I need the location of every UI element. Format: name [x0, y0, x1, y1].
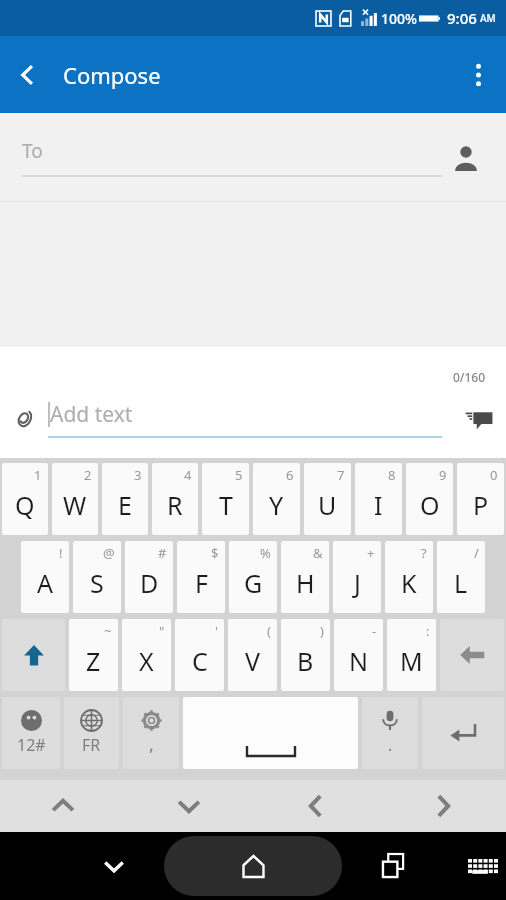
- staticText: H: [296, 566, 315, 600]
- button[interactable]: Back: [0, 47, 56, 103]
- button[interactable]: %: [229, 541, 277, 613]
- button[interactable]: Home: [225, 838, 281, 894]
- staticText: 4: [184, 466, 192, 484]
- button[interactable]: Right: [379, 780, 506, 832]
- staticText: /: [474, 544, 479, 562]
- button[interactable]: 8: [355, 463, 402, 535]
- staticText: ': [215, 622, 218, 640]
- button[interactable]: ': [175, 619, 224, 691]
- staticText: V: [245, 644, 261, 678]
- staticText: M: [400, 644, 423, 678]
- staticText: F: [195, 566, 208, 600]
- button[interactable]: 4: [152, 463, 198, 535]
- staticText: 1: [34, 466, 42, 484]
- staticText: X: [139, 644, 154, 678]
- staticText: &: [313, 544, 323, 562]
- staticText: .: [388, 734, 393, 756]
- staticText: Compose: [63, 60, 161, 90]
- staticText: N: [349, 644, 369, 678]
- button[interactable]: /: [437, 541, 485, 613]
- button[interactable]: 1: [2, 463, 48, 535]
- staticText: B: [297, 644, 314, 678]
- button[interactable]: @: [73, 541, 121, 613]
- button[interactable]: 6: [253, 463, 300, 535]
- button[interactable]: 7: [304, 463, 351, 535]
- staticText: C: [192, 644, 208, 678]
- staticText: AM: [480, 11, 496, 25]
- button[interactable]: Recents: [368, 840, 420, 892]
- staticText: W: [63, 488, 87, 522]
- button[interactable]: More options: [450, 47, 506, 103]
- button[interactable]: Up: [0, 780, 126, 832]
- button[interactable]: :: [387, 619, 436, 691]
- staticText: To: [22, 138, 43, 164]
- staticText: G: [244, 566, 263, 600]
- button[interactable]: +: [333, 541, 381, 613]
- button[interactable]: Shift: [2, 619, 65, 691]
- staticText: 3: [134, 466, 142, 484]
- staticText: !: [59, 544, 63, 562]
- staticText: S: [90, 566, 104, 600]
- staticText: %: [260, 544, 271, 562]
- staticText: U: [318, 488, 337, 522]
- staticText: J: [354, 566, 361, 600]
- staticText: FR: [82, 734, 101, 756]
- button[interactable]: 0: [457, 463, 504, 535]
- staticText: -: [372, 622, 377, 640]
- staticText: 100%: [381, 9, 417, 28]
- button[interactable]: #: [125, 541, 173, 613]
- button[interactable]: 2: [52, 463, 98, 535]
- staticText: #: [158, 544, 167, 562]
- staticText: 8: [388, 466, 396, 484]
- button[interactable]: Backspace: [440, 619, 504, 691]
- staticText: +: [367, 544, 375, 562]
- button[interactable]: Language: [64, 697, 119, 769]
- staticText: T: [219, 488, 233, 522]
- staticText: Add text: [50, 400, 133, 429]
- button[interactable]: -: [334, 619, 383, 691]
- button[interactable]: Hide keyboard: [88, 840, 140, 892]
- button[interactable]: Left: [252, 780, 379, 832]
- staticText: ): [320, 622, 324, 640]
- staticText: I: [374, 488, 383, 522]
- button[interactable]: Settings: [123, 697, 179, 769]
- button[interactable]: ": [122, 619, 171, 691]
- button[interactable]: ~: [69, 619, 118, 691]
- staticText: E: [118, 488, 132, 522]
- staticText: ?: [421, 544, 427, 562]
- button[interactable]: Enter: [422, 697, 504, 769]
- button[interactable]: Down: [126, 780, 252, 832]
- staticText: 0: [490, 466, 498, 484]
- button[interactable]: Attach: [0, 395, 48, 443]
- staticText: ~: [104, 622, 112, 640]
- staticText: Z: [86, 644, 101, 678]
- staticText: K: [401, 566, 417, 600]
- button[interactable]: $: [177, 541, 225, 613]
- button[interactable]: Space: [183, 697, 358, 769]
- button[interactable]: 5: [202, 463, 249, 535]
- staticText: 5: [235, 466, 243, 484]
- staticText: $: [211, 544, 219, 562]
- button[interactable]: 3: [102, 463, 148, 535]
- button[interactable]: Pick contact: [444, 136, 488, 180]
- staticText: :: [426, 622, 430, 640]
- staticText: 7: [337, 466, 345, 484]
- button[interactable]: Voice input: [362, 697, 418, 769]
- staticText: ": [159, 622, 165, 640]
- staticText: Y: [269, 488, 284, 522]
- staticText: 9: [439, 466, 447, 484]
- button[interactable]: (: [228, 619, 277, 691]
- button[interactable]: &: [281, 541, 329, 613]
- staticText: 6: [286, 466, 294, 484]
- button[interactable]: 9: [406, 463, 453, 535]
- button[interactable]: Symbols: [2, 697, 60, 769]
- button[interactable]: !: [21, 541, 69, 613]
- button[interactable]: Switch keyboard: [456, 842, 504, 890]
- staticText: Q: [15, 488, 35, 522]
- button[interactable]: ?: [385, 541, 433, 613]
- staticText: R: [167, 488, 183, 522]
- button[interactable]: ): [281, 619, 330, 691]
- staticText: D: [140, 566, 159, 600]
- button[interactable]: Send: [452, 392, 506, 446]
